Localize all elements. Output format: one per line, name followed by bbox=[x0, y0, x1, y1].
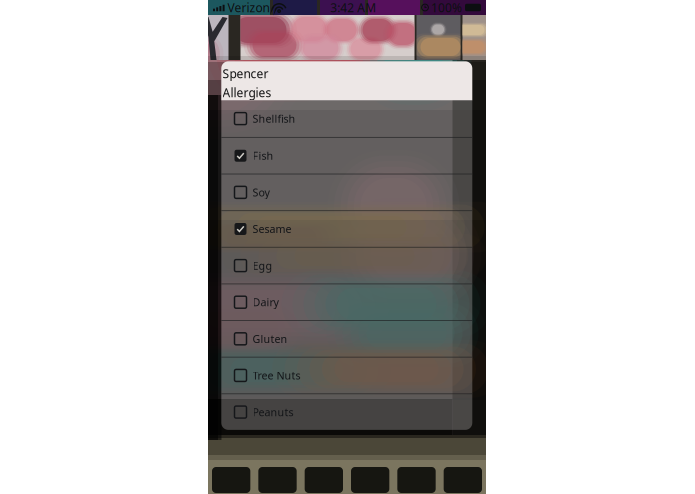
button[interactable]: Shellfish bbox=[221, 100, 472, 137]
button[interactable]: Tree Nuts bbox=[221, 357, 472, 393]
button[interactable]: Sesame bbox=[221, 210, 472, 247]
button[interactable]: Fish bbox=[221, 137, 472, 173]
staticText: Soy bbox=[252, 185, 269, 199]
button[interactable]: Gluten bbox=[221, 320, 472, 357]
staticText: 100% bbox=[431, 0, 462, 15]
staticText: Tree Nuts bbox=[252, 368, 300, 383]
staticText: Allergies bbox=[223, 85, 272, 100]
staticText: Gluten bbox=[252, 332, 287, 346]
button[interactable]: Dairy bbox=[221, 283, 472, 320]
staticText: 3:42 AM bbox=[330, 0, 376, 15]
staticText: Egg bbox=[252, 258, 272, 273]
staticText: Spencer bbox=[223, 66, 269, 81]
staticText: Dairy bbox=[252, 295, 278, 309]
button[interactable]: Peanuts bbox=[221, 393, 472, 430]
button[interactable]: Soy bbox=[221, 173, 472, 210]
staticText: Fish bbox=[252, 149, 273, 163]
button[interactable]: Egg bbox=[221, 247, 472, 283]
staticText: Verizon bbox=[228, 0, 270, 15]
staticText: Sesame bbox=[252, 222, 291, 236]
staticText: Peanuts bbox=[252, 405, 293, 419]
staticText: Shellfish bbox=[252, 111, 295, 126]
